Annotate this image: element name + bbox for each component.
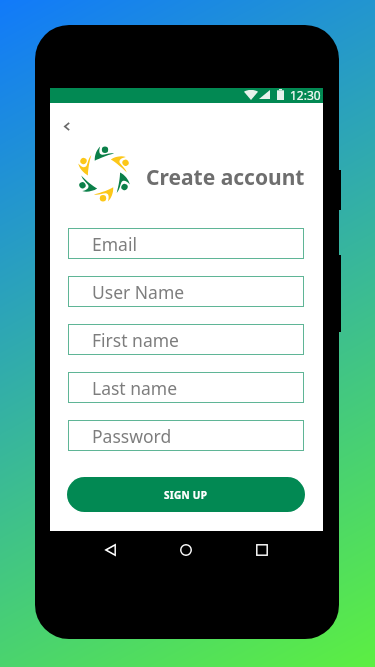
staticText: First name <box>92 328 179 352</box>
staticText: 12:30 <box>290 87 321 102</box>
button[interactable]: Password <box>68 420 304 451</box>
button[interactable]: User Name <box>68 276 304 307</box>
button[interactable]: Home <box>174 538 198 562</box>
button[interactable]: Back <box>56 115 78 137</box>
staticText: Create account <box>146 163 305 192</box>
staticText: Last name <box>92 376 178 400</box>
staticText: User Name <box>92 280 185 304</box>
button[interactable]: Last name <box>68 372 304 403</box>
button[interactable]: First name <box>68 324 304 355</box>
button[interactable]: SIGN UP <box>67 477 305 512</box>
button[interactable]: Email <box>68 228 304 259</box>
staticText: Email <box>92 232 137 256</box>
button[interactable]: Back <box>98 538 122 562</box>
staticText: Password <box>92 424 172 448</box>
button[interactable]: Recent apps <box>250 538 274 562</box>
staticText: SIGN UP <box>164 488 208 502</box>
